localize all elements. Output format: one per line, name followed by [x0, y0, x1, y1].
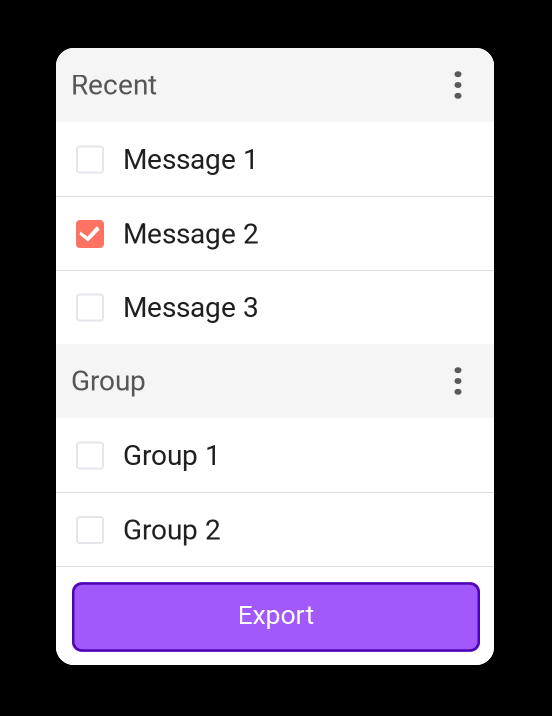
button[interactable]: More options: [435, 48, 481, 122]
button[interactable]: More options: [435, 344, 481, 418]
button[interactable]: Group 2: [56, 493, 494, 567]
staticText: Message 1: [123, 143, 259, 176]
staticText: Group 2: [123, 514, 221, 546]
button[interactable]: Group 1: [56, 418, 494, 493]
button[interactable]: Export: [56, 567, 494, 665]
staticText: Export: [237, 599, 314, 631]
button[interactable]: Message 3: [56, 271, 494, 344]
staticText: Message 3: [123, 291, 259, 324]
staticText: Group 1: [123, 439, 221, 472]
staticText: Message 2: [123, 218, 259, 250]
staticText: Group: [71, 365, 146, 397]
staticText: Recent: [71, 69, 157, 101]
button[interactable]: Message 2: [56, 197, 494, 271]
button[interactable]: Message 1: [56, 122, 494, 197]
